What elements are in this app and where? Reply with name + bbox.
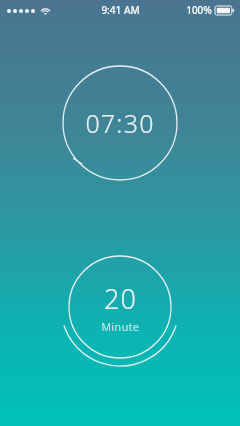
button[interactable]: 20 [56, 243, 184, 371]
other: Wi-Fi signal [40, 6, 51, 15]
staticText: 9:41 AM [101, 3, 140, 17]
button[interactable]: 07:30 [60, 63, 180, 183]
staticText: 100% [186, 3, 212, 17]
staticText: Minute [101, 319, 140, 334]
staticText: 20 [104, 280, 137, 317]
other: Battery full [215, 6, 234, 15]
staticText: 07:30 [85, 106, 155, 140]
